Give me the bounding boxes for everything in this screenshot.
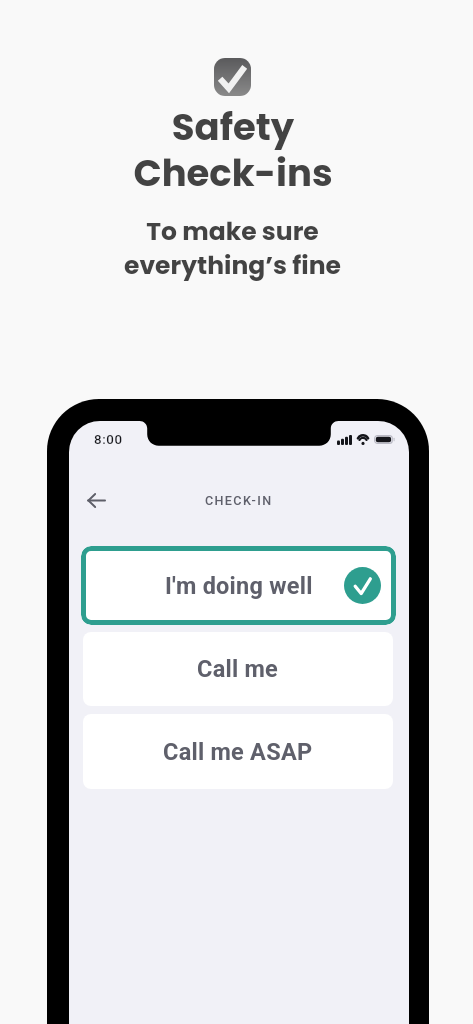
staticText: I'm doing well — [165, 572, 313, 600]
staticText: CHECK-IN — [205, 493, 273, 508]
staticText: To make sure everything’s fine — [124, 214, 341, 282]
button[interactable]: Call me ASAP — [83, 714, 393, 789]
staticText: Call me — [197, 655, 279, 683]
staticText: Call me ASAP — [163, 738, 313, 766]
button[interactable]: Back — [78, 482, 114, 518]
button[interactable]: Call me — [83, 632, 393, 706]
staticText: 8:00 — [94, 432, 123, 448]
staticText: Safety Check-ins — [133, 101, 333, 199]
button[interactable]: I'm doing well — [81, 546, 396, 625]
